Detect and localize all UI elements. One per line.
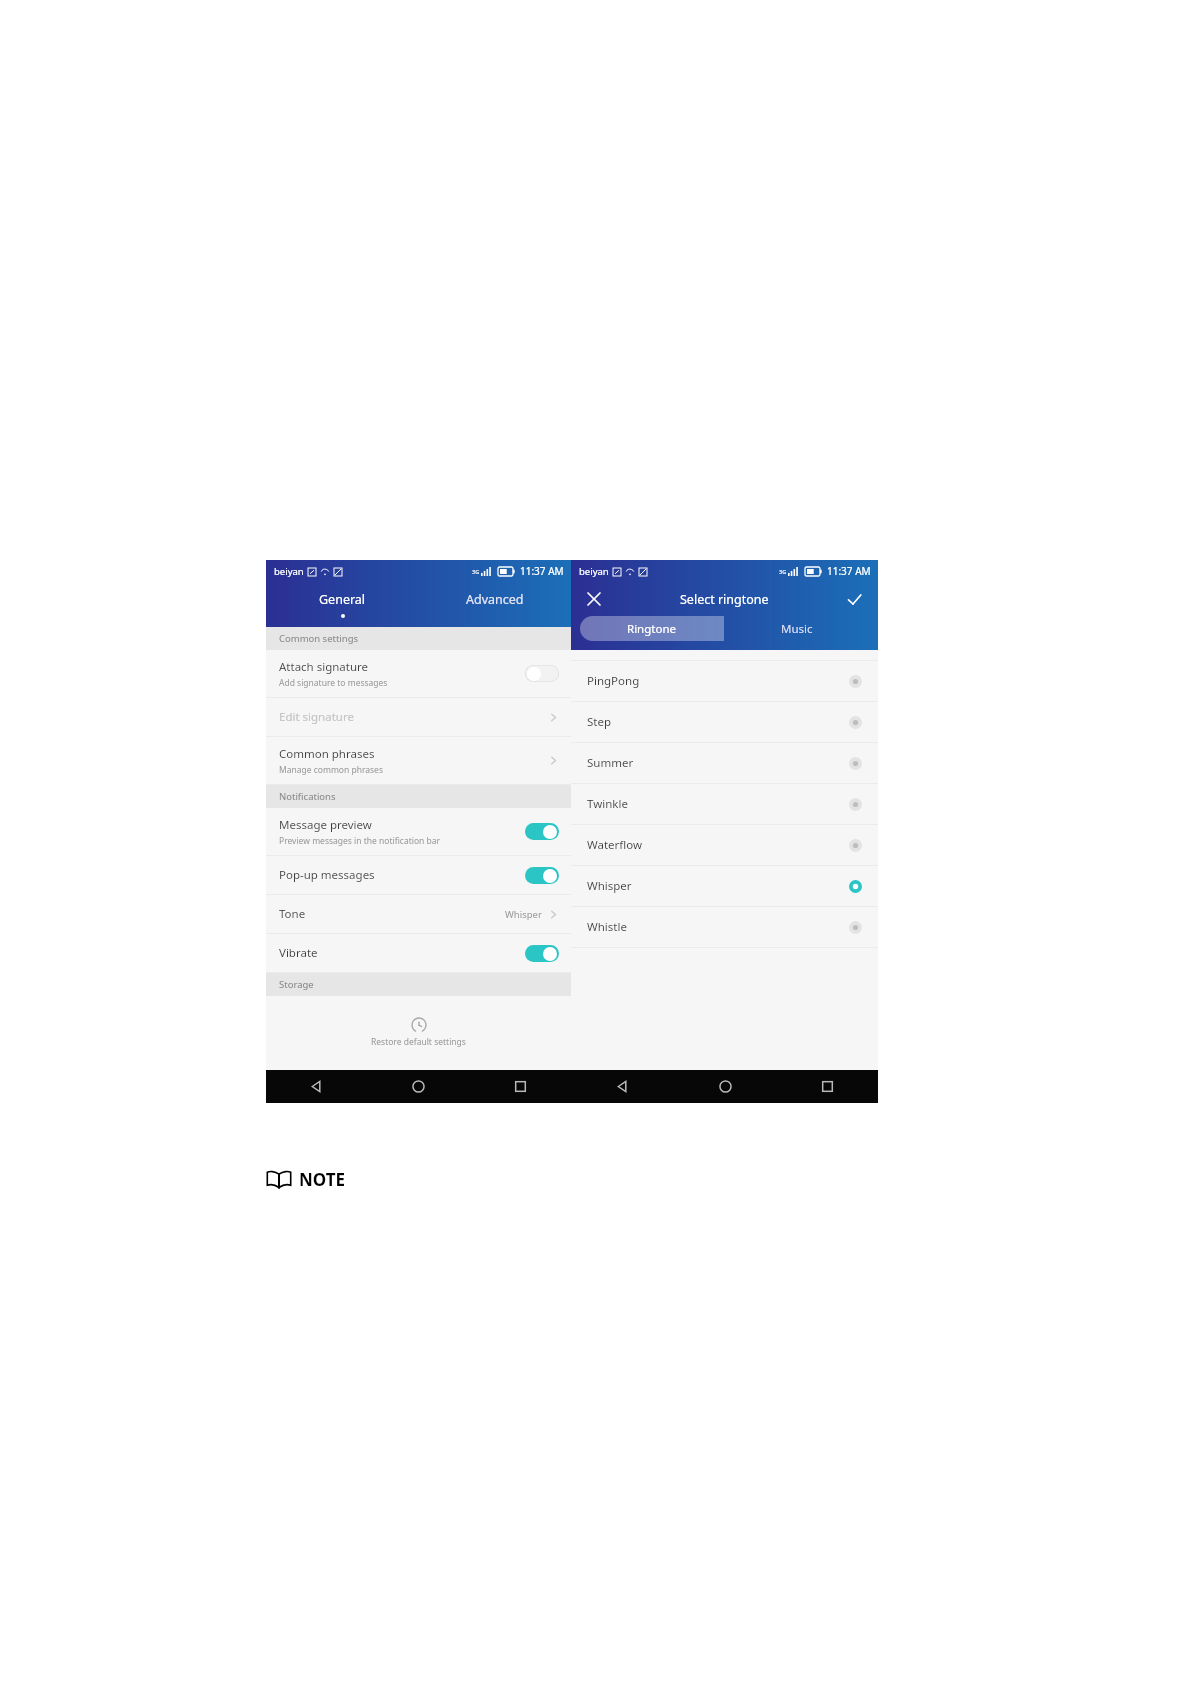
button[interactable]: Music <box>724 616 869 641</box>
button[interactable]: Waterflow <box>571 825 878 865</box>
staticText: Tone <box>279 906 306 922</box>
staticText: Edit signature <box>279 709 354 725</box>
staticText: Attach signature <box>279 659 369 675</box>
staticText: Pop-up messages <box>279 867 375 883</box>
staticText: beiyan <box>274 565 304 578</box>
staticText: Ringtone <box>627 621 677 637</box>
button[interactable]: Recents <box>469 1070 571 1103</box>
button[interactable]: Whisper <box>571 866 878 906</box>
staticText: Twinkle <box>587 796 849 812</box>
button[interactable]: Edit signature <box>266 698 571 736</box>
staticText: PingPong <box>587 673 849 689</box>
button[interactable]: Pop-up messages <box>266 856 571 894</box>
button[interactable]: Recents <box>776 1070 878 1103</box>
button[interactable]: Summer <box>571 743 878 783</box>
button[interactable]: Step <box>571 702 878 742</box>
staticText: Restore default settings <box>371 1036 466 1048</box>
staticText: beiyan <box>579 565 609 578</box>
staticText: Common phrases <box>279 746 375 762</box>
staticText: Select ringtone <box>680 591 769 608</box>
staticText: Vibrate <box>279 945 318 961</box>
button[interactable]: Message preview <box>266 808 571 855</box>
staticText: Whisper <box>505 908 542 921</box>
staticText: Notifications <box>279 790 336 803</box>
button[interactable]: Vibrate <box>266 934 571 972</box>
button[interactable]: Close <box>579 584 609 614</box>
button[interactable] <box>525 945 559 962</box>
staticText: Whistle <box>587 919 849 935</box>
staticText: 3G <box>779 568 787 575</box>
staticText: 11:37 AM <box>827 564 871 578</box>
staticText: Preview messages in the notification bar <box>279 835 441 847</box>
button[interactable]: Back <box>266 1070 367 1103</box>
button[interactable]: Ringtone <box>580 616 724 641</box>
button[interactable]: Whistle <box>571 907 878 947</box>
staticText: 3G <box>472 568 480 575</box>
button[interactable]: Common phrases <box>266 737 571 784</box>
button[interactable]: Tone <box>266 895 571 933</box>
staticText: Music <box>781 621 813 637</box>
staticText: Add signature to messages <box>279 677 388 689</box>
button[interactable]: PingPong <box>571 661 878 701</box>
button[interactable]: Twinkle <box>571 784 878 824</box>
button[interactable]: Back <box>571 1070 674 1103</box>
staticText: NOTE <box>299 1168 346 1191</box>
button[interactable]: Advanced <box>418 582 571 627</box>
button[interactable] <box>525 665 559 682</box>
button[interactable] <box>525 867 559 884</box>
button[interactable]: General <box>266 582 418 627</box>
staticText: Manage common phrases <box>279 764 383 776</box>
staticText: Common settings <box>279 632 359 645</box>
staticText: Message preview <box>279 817 372 833</box>
staticText: Whisper <box>587 878 849 894</box>
staticText: Waterflow <box>587 837 849 853</box>
button[interactable]: Confirm <box>839 584 869 614</box>
button[interactable]: Home <box>367 1070 469 1103</box>
button[interactable]: Restore default settings <box>266 996 571 1070</box>
staticText: Storage <box>279 978 314 991</box>
staticText: Summer <box>587 755 849 771</box>
staticText: General <box>319 591 366 608</box>
button[interactable]: Home <box>674 1070 776 1103</box>
staticText: 11:37 AM <box>520 564 564 578</box>
button[interactable]: Attach signature <box>266 650 571 697</box>
staticText: Advanced <box>466 591 524 608</box>
staticText: Step <box>587 714 849 730</box>
button[interactable] <box>525 823 559 840</box>
